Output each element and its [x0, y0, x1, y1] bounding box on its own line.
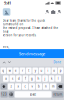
staticText: space [30, 93, 37, 96]
button[interactable]: Shift [0, 83, 7, 90]
button[interactable]: Previous [2, 59, 7, 66]
button[interactable]: h [36, 75, 41, 82]
staticText: f [25, 77, 26, 80]
button[interactable]: j [42, 75, 48, 82]
button[interactable]: a [3, 75, 9, 82]
button[interactable]: n [43, 83, 49, 90]
button[interactable]: t [26, 67, 32, 74]
staticText: p [60, 69, 62, 72]
staticText: e [15, 69, 17, 72]
staticText: version for your records. [3, 34, 37, 37]
button[interactable]: Next keyboard [8, 91, 14, 98]
button[interactable]: u [39, 67, 44, 74]
staticText: w [9, 69, 11, 72]
staticText: the revised proposal. I have attached th… [3, 26, 59, 33]
button[interactable]: d [16, 75, 22, 82]
button[interactable]: Camera [51, 9, 56, 15]
staticText: a [5, 77, 6, 80]
button[interactable]: Done [52, 59, 62, 66]
staticText: n [45, 85, 47, 88]
staticText: return [53, 93, 62, 96]
button[interactable]: i [45, 67, 51, 74]
staticText: h [37, 77, 39, 80]
button[interactable]: p [58, 67, 63, 74]
button[interactable]: c [22, 83, 28, 90]
staticText: o [53, 69, 55, 72]
staticText: Dear Team, thanks for the quick turnarou… [3, 19, 45, 26]
button[interactable]: Contacts [45, 9, 50, 15]
staticText: g [31, 77, 33, 80]
button[interactable]: b [36, 83, 42, 90]
staticText: y [35, 69, 36, 72]
staticText: r [22, 69, 23, 72]
staticText: m [52, 85, 54, 88]
staticText: Best, [3, 45, 10, 48]
button[interactable]: return [52, 91, 63, 98]
button[interactable]: y [32, 67, 38, 74]
button[interactable]: Attachment [2, 8, 11, 16]
button[interactable]: e [13, 67, 19, 74]
button[interactable]: m [50, 83, 56, 90]
button[interactable]: s [9, 75, 15, 82]
staticText: t [28, 69, 29, 72]
staticText: q [2, 69, 4, 72]
button[interactable]: Send message [0, 49, 64, 58]
button[interactable]: o [51, 67, 57, 74]
staticText: 123 [1, 93, 7, 96]
button[interactable]: v [29, 83, 35, 90]
button[interactable]: l [55, 75, 61, 82]
staticText: s [12, 77, 13, 80]
staticText: d [18, 77, 20, 80]
staticText: Done [53, 60, 61, 64]
button[interactable]: 123 [0, 91, 8, 98]
button[interactable]: w [7, 67, 12, 74]
button[interactable]: k [49, 75, 54, 82]
staticText: k [51, 77, 52, 80]
staticText: u [41, 69, 43, 72]
staticText: j [45, 77, 46, 80]
button[interactable]: Profile [57, 9, 62, 15]
staticText: c [24, 85, 25, 88]
button[interactable]: f [23, 75, 28, 82]
button[interactable]: x [15, 83, 21, 90]
button[interactable]: r [20, 67, 25, 74]
staticText: i [47, 69, 48, 72]
staticText: z [10, 85, 11, 88]
button[interactable]: z [8, 83, 14, 90]
button[interactable]: g [29, 75, 35, 82]
staticText: 9:41 [4, 0, 11, 6]
button[interactable]: Next [7, 59, 12, 66]
staticText: l [58, 77, 59, 80]
button[interactable]: space [15, 91, 51, 98]
staticText: Send message [19, 51, 45, 56]
staticText: b [38, 85, 40, 88]
button[interactable]: q [0, 67, 6, 74]
button[interactable]: Delete [57, 83, 63, 90]
